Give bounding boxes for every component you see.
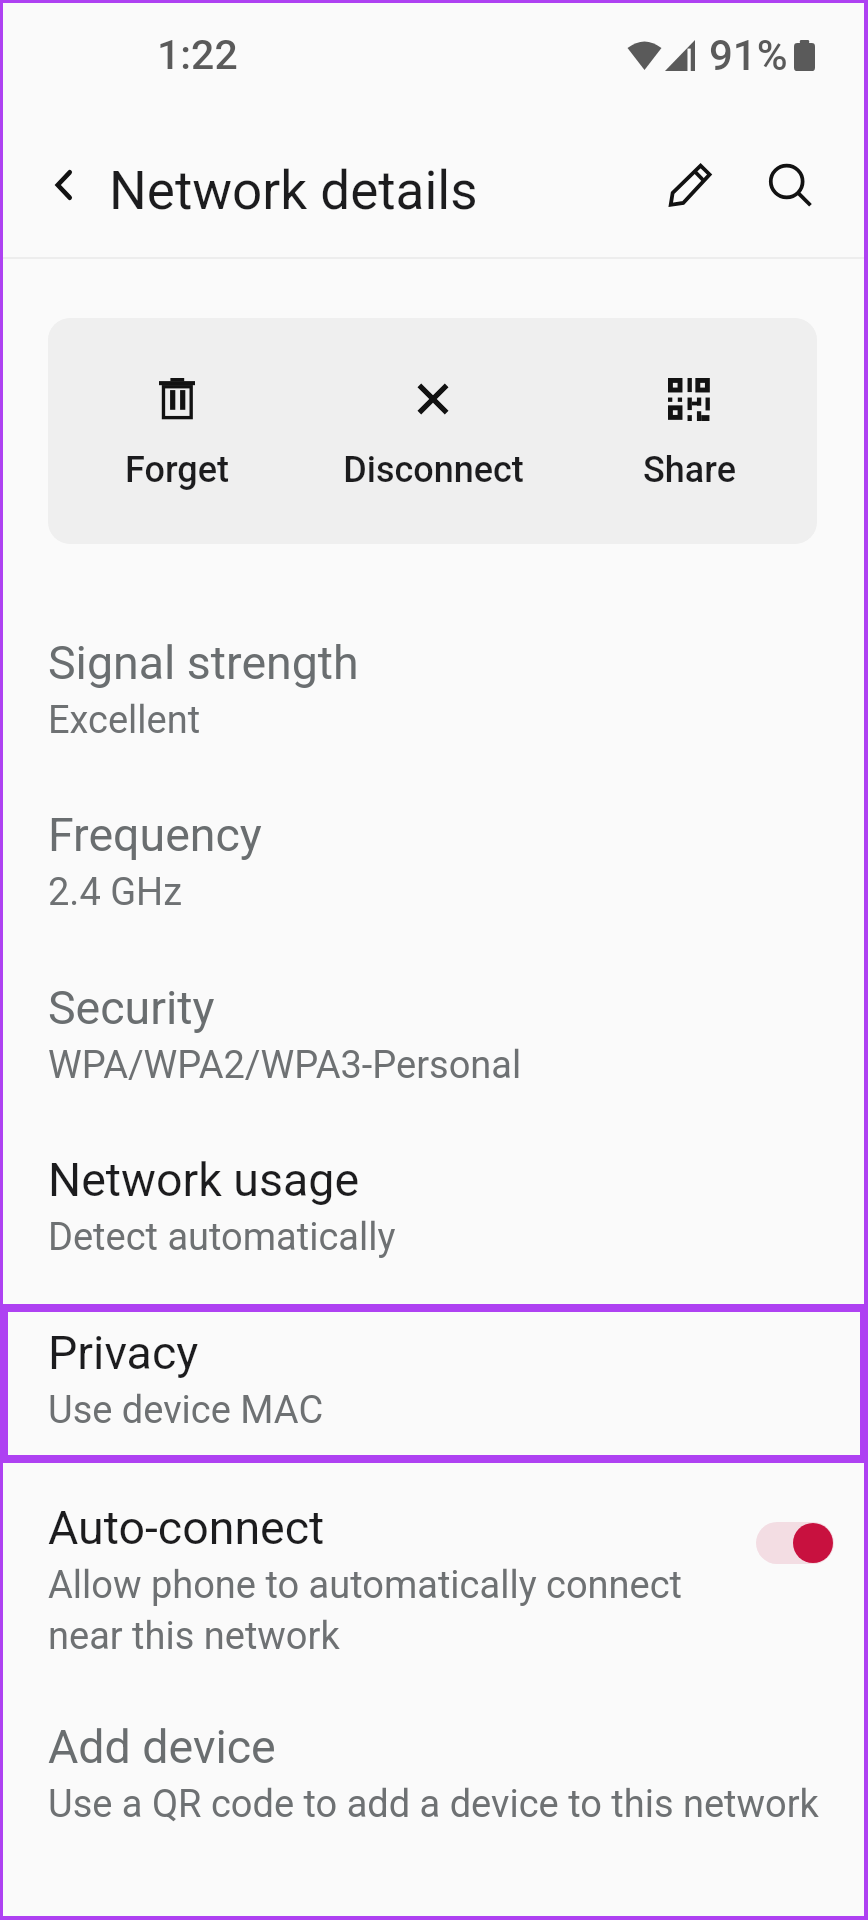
button[interactable]: Auto-connect: [0, 1481, 868, 1681]
staticText: Share: [643, 449, 736, 491]
button[interactable]: Frequency: [0, 802, 868, 952]
staticText: Forget: [125, 449, 229, 491]
staticText: Detect automatically: [48, 1215, 396, 1260]
button[interactable]: Add device: [0, 1714, 868, 1864]
button[interactable]: Privacy: [0, 1320, 868, 1470]
button[interactable]: Network usage: [0, 1147, 868, 1297]
staticText: Disconnect: [343, 449, 524, 491]
staticText: Allow phone to automatically connect nea…: [48, 1563, 683, 1658]
staticText: Signal strength: [48, 636, 359, 690]
staticText: Use a QR code to add a device to this ne…: [48, 1782, 819, 1827]
staticText: WPA/WPA2/WPA3-Personal: [48, 1043, 522, 1088]
button[interactable]: Signal strength: [0, 630, 868, 780]
staticText: 1:22: [157, 31, 238, 79]
staticText: Network details: [109, 160, 478, 222]
staticText: Auto-connect: [48, 1501, 325, 1555]
button[interactable]: Back: [21, 143, 105, 227]
staticText: Privacy: [48, 1326, 199, 1380]
button[interactable]: Disconnect: [305, 318, 561, 544]
button[interactable]: Security: [0, 975, 868, 1125]
button[interactable]: Search: [748, 143, 832, 227]
staticText: Security: [48, 981, 215, 1035]
staticText: 91%: [709, 31, 788, 80]
staticText: Network usage: [48, 1153, 360, 1207]
staticText: Excellent: [48, 698, 201, 743]
button[interactable]: Share: [561, 318, 817, 544]
staticText: Use device MAC: [48, 1388, 324, 1433]
staticText: 2.4 GHz: [48, 870, 183, 915]
button[interactable]: Forget: [48, 318, 305, 544]
staticText: Frequency: [48, 808, 262, 862]
button[interactable]: Edit: [648, 143, 732, 227]
staticText: Add device: [48, 1720, 276, 1774]
